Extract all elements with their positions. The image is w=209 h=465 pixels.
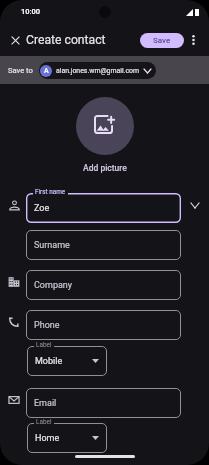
staticText: Create contact: [26, 33, 106, 47]
button[interactable]: Close: [6, 31, 24, 49]
staticText: Mobile: [35, 356, 63, 367]
staticText: Add picture: [83, 163, 127, 173]
button[interactable]: Phone: [26, 310, 181, 340]
button[interactable]: Expand name fields: [181, 193, 209, 223]
button[interactable]: Company: [26, 270, 181, 300]
staticText: A: [44, 67, 49, 75]
staticText: Email: [34, 398, 57, 409]
button[interactable]: Surname: [26, 230, 181, 260]
button[interactable]: Save: [140, 33, 184, 48]
button[interactable]: More options: [184, 31, 202, 49]
staticText: Phone: [34, 320, 60, 331]
button[interactable]: Label: [27, 423, 107, 453]
staticText: First name: [35, 188, 66, 196]
button[interactable]: Email: [26, 388, 181, 418]
staticText: Label: [36, 341, 52, 349]
staticText: Save to: [8, 66, 33, 75]
button[interactable]: Label: [27, 346, 107, 376]
staticText: Zoe: [34, 203, 50, 214]
staticText: 10:00: [21, 7, 41, 16]
staticText: Surname: [34, 240, 70, 251]
button[interactable]: First name: [26, 193, 181, 223]
staticText: Company: [34, 280, 73, 291]
button[interactable]: Add picture: [76, 97, 134, 155]
staticText: Label: [36, 418, 52, 426]
staticText: alan.jones.wm@gmail.com: [56, 67, 140, 75]
button[interactable]: A: [39, 62, 156, 79]
staticText: Save: [153, 36, 171, 45]
staticText: Home: [35, 433, 60, 444]
